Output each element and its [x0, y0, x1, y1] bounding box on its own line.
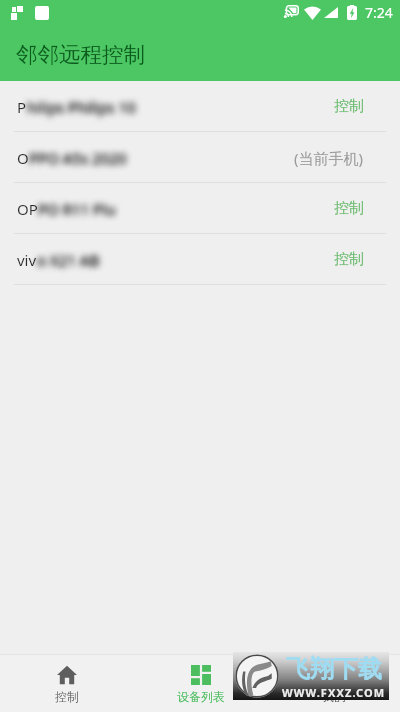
staticText: P — [17, 97, 27, 117]
staticText: 控制 — [334, 97, 364, 116]
staticText: 控制 — [55, 689, 79, 704]
staticText: (当前手机) — [294, 148, 364, 168]
staticText: hilips Philips 10 — [27, 97, 136, 117]
button[interactable]: P — [0, 81, 400, 132]
button[interactable]: 控制 — [0, 654, 134, 712]
button[interactable]: OP — [0, 183, 400, 234]
staticText: 控制 — [334, 250, 364, 269]
button[interactable]: 设备列表 — [134, 654, 267, 712]
staticText: 设备列表 — [177, 689, 225, 704]
staticText: o X21 AB — [37, 250, 100, 270]
staticText: WWW.FXXZ.COM — [282, 685, 386, 700]
staticText: PO R11 Plu — [38, 199, 116, 219]
button[interactable]: 我的 — [267, 654, 400, 712]
staticText: OP — [17, 199, 38, 219]
staticText: PPO A5s 2020 — [29, 148, 127, 168]
staticText: viv — [17, 250, 37, 270]
staticText: 飞翔下载 — [286, 654, 382, 684]
staticText: O — [17, 148, 29, 168]
staticText: 7:24 — [365, 3, 393, 22]
button[interactable]: viv — [0, 234, 400, 285]
staticText: hilips Philips 10 — [27, 97, 136, 117]
staticText: o X21 AB — [37, 250, 100, 270]
staticText: PO R11 Plu — [38, 199, 116, 219]
staticText: 控制 — [334, 199, 364, 218]
button[interactable]: O — [0, 132, 400, 183]
staticText: 我的 — [322, 689, 346, 704]
staticText: PPO A5s 2020 — [29, 148, 127, 168]
staticText: 邻邻远程控制 — [16, 41, 145, 68]
